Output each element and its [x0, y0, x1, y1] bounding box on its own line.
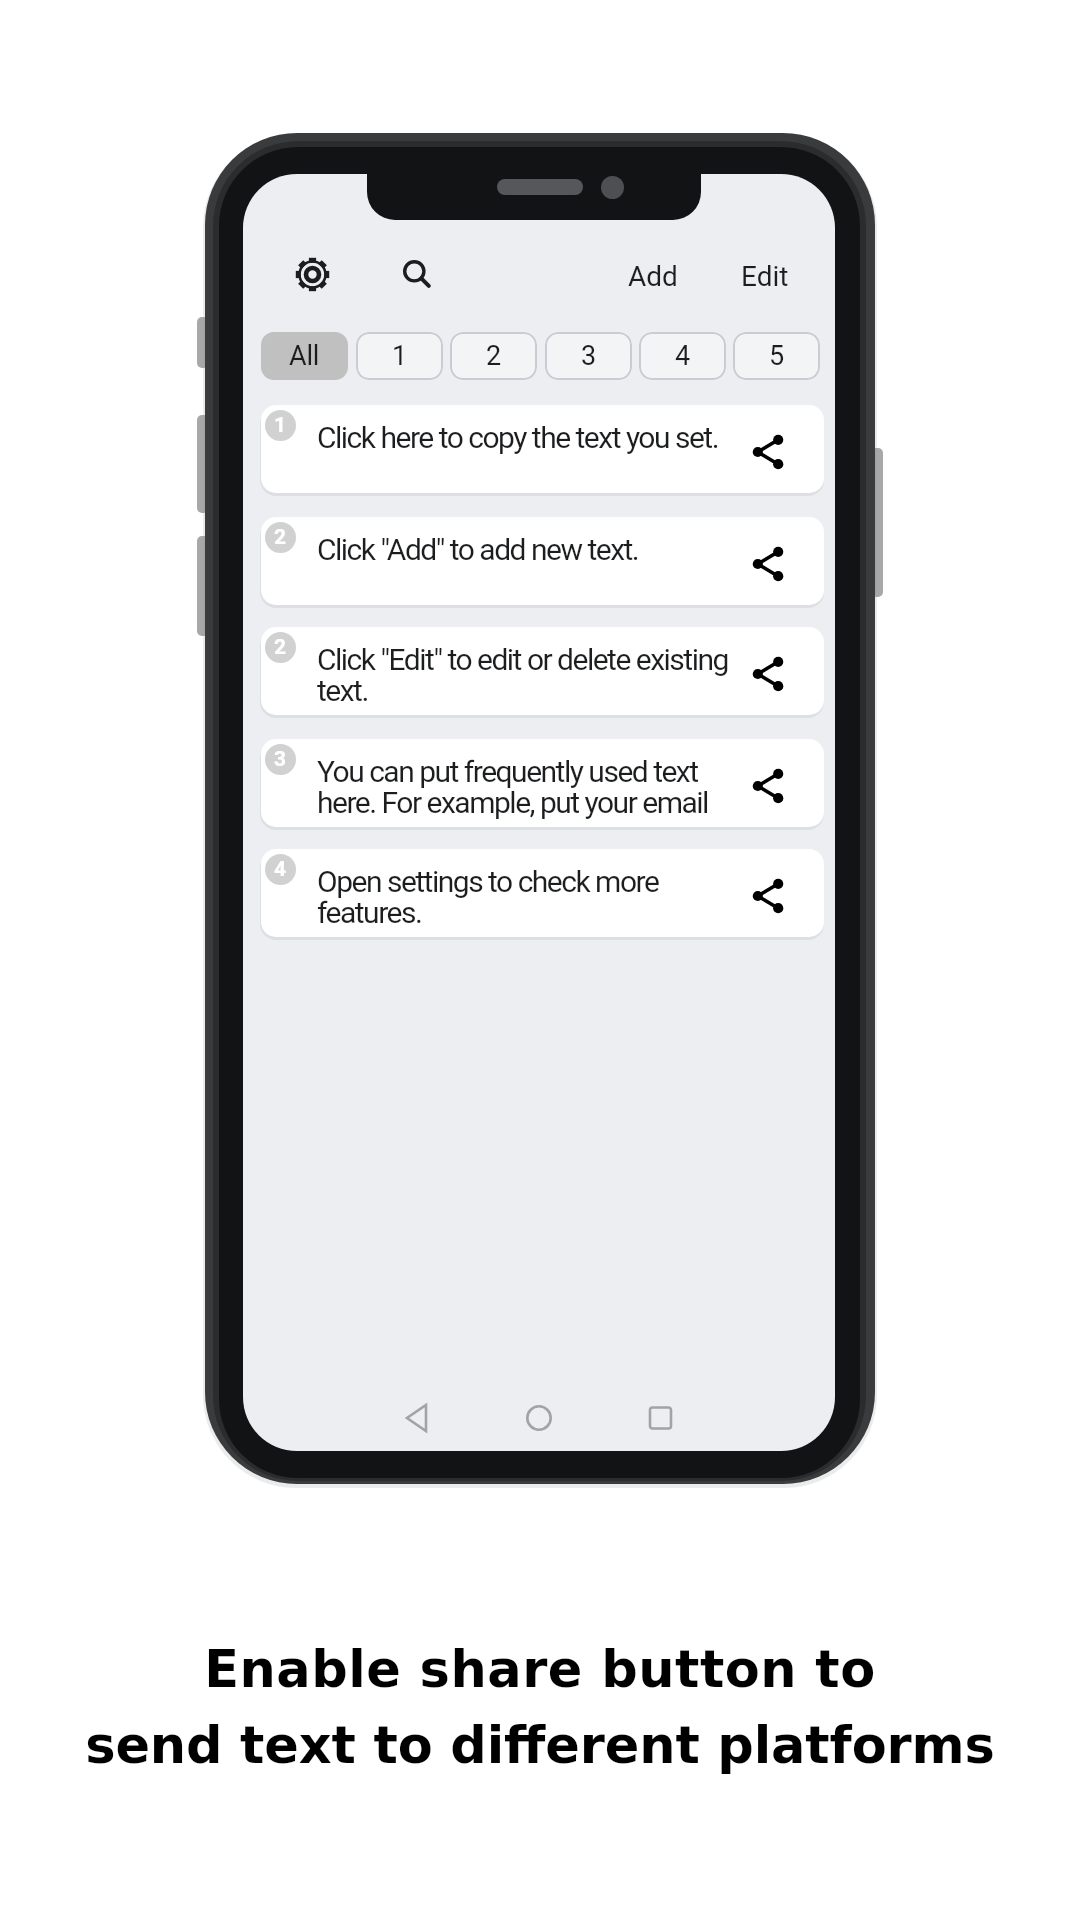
staticText: 5 — [769, 340, 784, 372]
button[interactable]: Edit — [725, 258, 805, 294]
staticText: Open settings to check more — [317, 864, 659, 899]
staticText: 4 — [274, 857, 287, 882]
staticText: here. For example, put your email — [317, 785, 708, 820]
button[interactable]: Click here to copy the text you set. — [261, 405, 824, 493]
button[interactable]: Click "Edit" to edit or delete existing — [261, 627, 824, 715]
staticText: Edit — [741, 260, 789, 293]
staticText: Click "Add" to add new text. — [317, 532, 639, 567]
button[interactable]: 5 — [733, 332, 820, 380]
staticText: Enable share button to — [0, 1640, 1080, 1699]
button[interactable]: Click "Add" to add new text. — [261, 517, 824, 605]
button[interactable] — [296, 258, 329, 291]
staticText: Click here to copy the text you set. — [317, 420, 719, 455]
staticText: text. — [317, 673, 368, 708]
staticText: 1 — [274, 413, 287, 438]
button[interactable] — [401, 258, 434, 291]
button[interactable]: Add — [613, 258, 693, 294]
staticText: 1 — [392, 340, 407, 372]
staticText: 2 — [274, 635, 287, 660]
staticText: 4 — [675, 340, 690, 372]
button[interactable]: 1 — [356, 332, 443, 380]
button[interactable] — [751, 435, 785, 469]
button[interactable] — [751, 769, 785, 803]
staticText: send text to different platforms — [0, 1716, 1080, 1775]
staticText: Add — [628, 260, 678, 293]
button[interactable] — [751, 547, 785, 581]
button[interactable]: Open settings to check more — [261, 849, 824, 937]
button[interactable]: All — [261, 332, 348, 380]
button[interactable] — [751, 879, 785, 913]
button[interactable]: 4 — [639, 332, 726, 380]
staticText: All — [289, 340, 320, 372]
button[interactable]: You can put frequently used text — [261, 739, 824, 827]
button[interactable]: 2 — [450, 332, 537, 380]
staticText: Click "Edit" to edit or delete existing — [317, 642, 728, 677]
staticText: You can put frequently used text — [317, 754, 698, 789]
staticText: features. — [317, 895, 422, 930]
staticText: 3 — [581, 340, 596, 372]
staticText: 3 — [274, 747, 287, 772]
staticText: 2 — [274, 525, 287, 550]
button[interactable] — [751, 657, 785, 691]
staticText: 2 — [486, 340, 501, 372]
button[interactable]: 3 — [545, 332, 632, 380]
